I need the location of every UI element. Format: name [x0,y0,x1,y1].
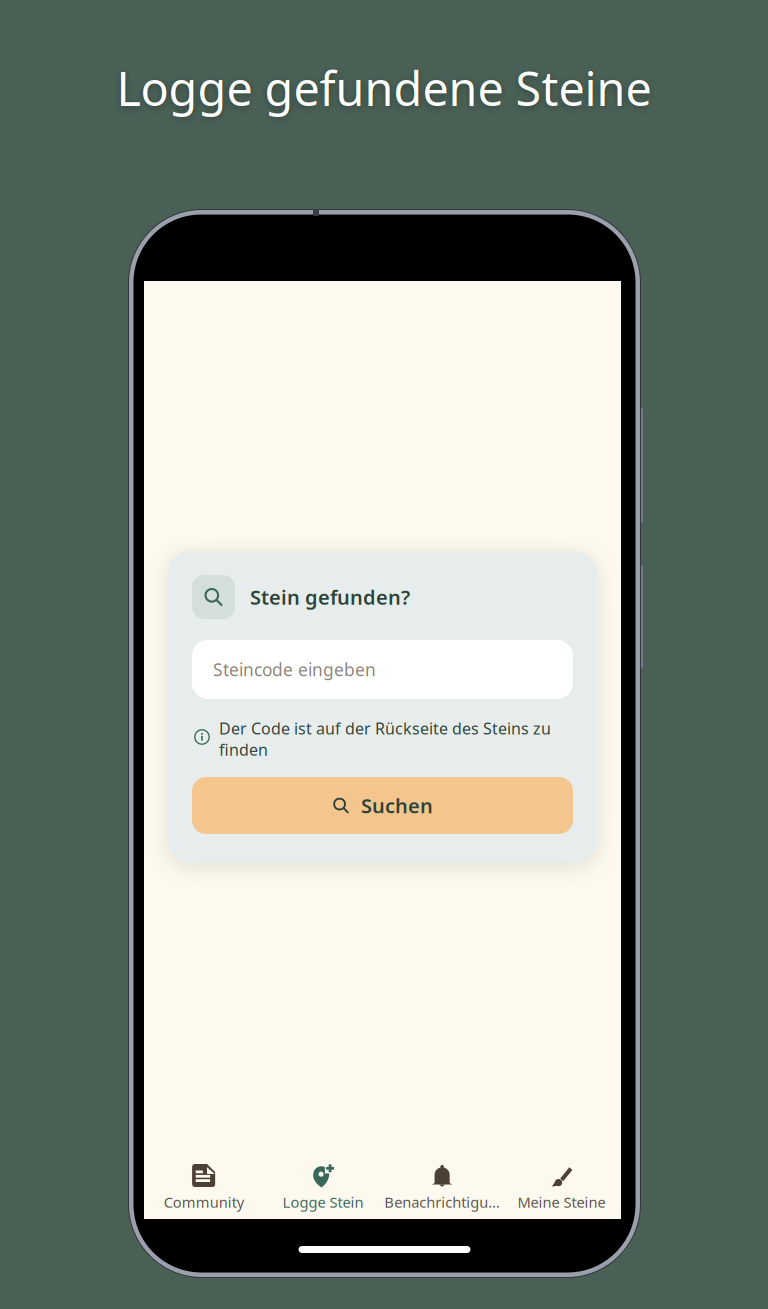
button[interactable]: Community [144,1148,263,1219]
staticText: Suchen [361,792,433,819]
button[interactable]: Meine Steine [502,1148,621,1219]
staticText: Meine Steine [517,1192,605,1212]
staticText: Logge Stein [282,1192,363,1212]
staticText: Benachrichtigu… [384,1192,500,1212]
button[interactable]: Logge Stein [263,1148,382,1219]
staticText: Community [164,1192,244,1212]
button[interactable]: Suchen [192,777,573,834]
staticText: Steincode eingeben [213,658,376,681]
staticText: Stein gefunden? [250,584,410,610]
staticText: Logge gefundene Steine [116,57,651,119]
button[interactable]: Benachrichtigu… [382,1148,502,1219]
staticText: Der Code ist auf der Rückseite des Stein… [219,718,551,760]
